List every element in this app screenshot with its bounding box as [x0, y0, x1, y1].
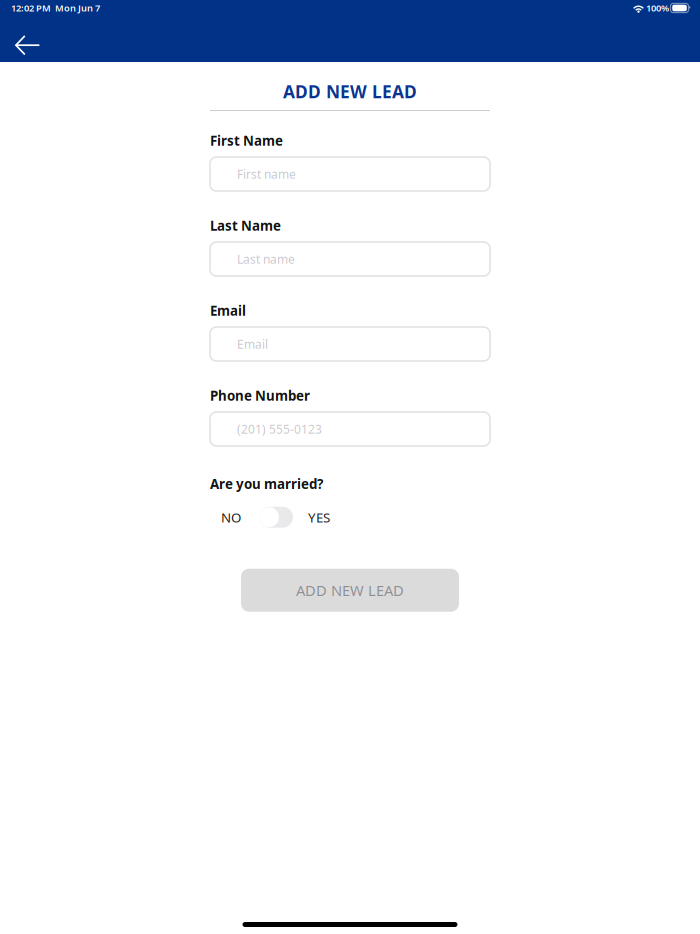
staticText: First Name [210, 132, 283, 149]
button[interactable]: ADD NEW LEAD [241, 569, 459, 612]
button[interactable]: Email [210, 327, 490, 361]
button[interactable]: Last name [210, 242, 490, 276]
button[interactable]: Married toggle [259, 507, 293, 528]
button[interactable]: Back [12, 15, 43, 61]
staticText: Phone Number [210, 387, 310, 404]
staticText: NO [221, 508, 241, 526]
staticText: YES [308, 508, 330, 526]
staticText: First name [237, 166, 296, 182]
staticText: (201) 555-0123 [237, 421, 322, 437]
staticText: 100% [646, 2, 669, 14]
staticText: Email [237, 336, 268, 352]
staticText: ADD NEW LEAD [283, 80, 417, 103]
staticText: Last Name [210, 217, 281, 234]
button[interactable]: (201) 555-0123 [210, 412, 490, 446]
staticText: Last name [237, 251, 295, 267]
staticText: ADD NEW LEAD [296, 580, 404, 600]
staticText: 12:02 PM [11, 2, 51, 14]
staticText: Mon Jun 7 [55, 2, 100, 14]
staticText: Are you married? [210, 475, 323, 493]
button[interactable]: First name [210, 157, 490, 191]
staticText: Email [210, 302, 246, 319]
